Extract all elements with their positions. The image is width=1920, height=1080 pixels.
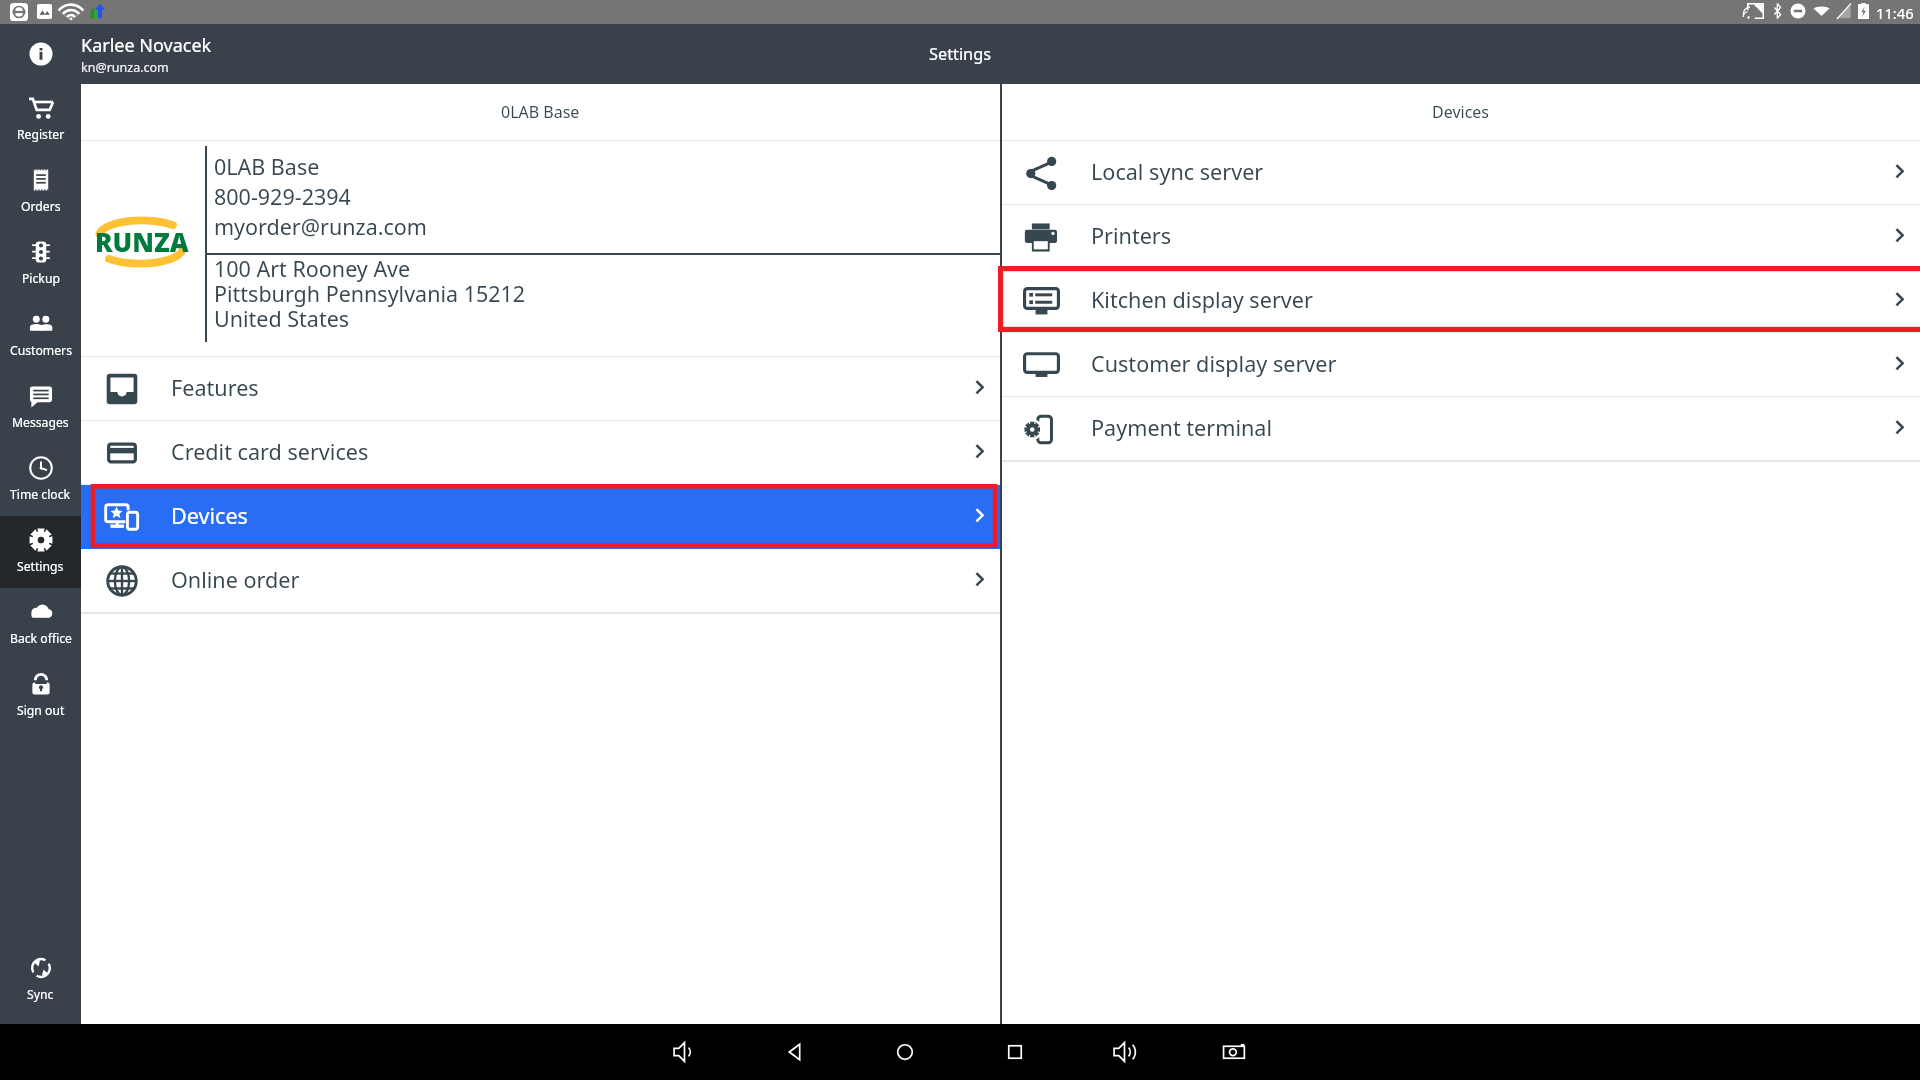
staticText: Register — [17, 126, 65, 143]
button[interactable]: Payment terminal — [1002, 397, 1920, 461]
button[interactable]: Pickup — [0, 228, 81, 300]
button[interactable]: Recents — [960, 1024, 1070, 1080]
staticText: RUNZA — [95, 224, 189, 259]
button[interactable]: Home — [850, 1024, 960, 1080]
button[interactable]: Settings — [0, 516, 81, 588]
staticText: Online order — [171, 565, 300, 594]
staticText: Settings — [17, 558, 64, 575]
button[interactable]: Customer display server — [1002, 333, 1920, 397]
staticText: Printers — [1091, 221, 1172, 250]
button[interactable]: Register — [0, 84, 81, 156]
staticText: 11:46 — [1876, 3, 1914, 23]
button[interactable]: Store information — [0, 24, 81, 84]
staticText: kn@runza.com — [81, 59, 169, 76]
button[interactable]: Time clock — [0, 444, 81, 516]
staticText: Back office — [10, 630, 72, 647]
staticText: Local sync server — [1091, 157, 1264, 186]
button[interactable]: Printers — [1002, 205, 1920, 269]
staticText: 0LAB Base — [501, 101, 580, 123]
button[interactable]: Devices — [81, 485, 1000, 549]
staticText: Messages — [12, 414, 69, 431]
button[interactable]: Online order — [81, 549, 1000, 613]
button[interactable]: Orders — [0, 156, 81, 228]
staticText: Karlee Novacek — [81, 33, 212, 58]
staticText: Features — [171, 373, 259, 402]
staticText: 0LAB Base 800-929-2394 myorder@runza.com — [214, 152, 427, 241]
staticText: Sync — [27, 986, 54, 1003]
button[interactable]: Back office — [0, 588, 81, 660]
button[interactable]: Back — [740, 1024, 850, 1080]
button[interactable]: Screenshot — [1180, 1024, 1290, 1080]
staticText: Devices — [1432, 101, 1490, 123]
staticText: Pickup — [22, 270, 60, 287]
staticText: Customer display server — [1091, 349, 1337, 378]
staticText: Customers — [10, 342, 72, 359]
button[interactable]: Volume down — [630, 1024, 740, 1080]
button[interactable]: Credit card services — [81, 421, 1000, 485]
staticText: 100 Art Rooney Ave Pittsburgh Pennsylvan… — [214, 254, 526, 333]
staticText: Orders — [21, 198, 61, 215]
staticText: Time clock — [10, 486, 71, 503]
button[interactable]: Kitchen display server — [1002, 269, 1920, 333]
button[interactable]: Customers — [0, 300, 81, 372]
staticText: Sign out — [17, 702, 65, 719]
button[interactable]: Volume up — [1070, 1024, 1180, 1080]
button[interactable]: Messages — [0, 372, 81, 444]
staticText: Devices — [171, 501, 248, 530]
staticText: Credit card services — [171, 437, 369, 466]
button[interactable]: Features — [81, 357, 1000, 421]
button[interactable]: Sign out — [0, 660, 81, 732]
button[interactable]: Local sync server — [1002, 141, 1920, 205]
staticText: Payment terminal — [1091, 413, 1272, 442]
button[interactable]: Sync — [0, 944, 81, 1016]
staticText: Settings — [929, 43, 992, 65]
staticText: Kitchen display server — [1091, 285, 1313, 314]
